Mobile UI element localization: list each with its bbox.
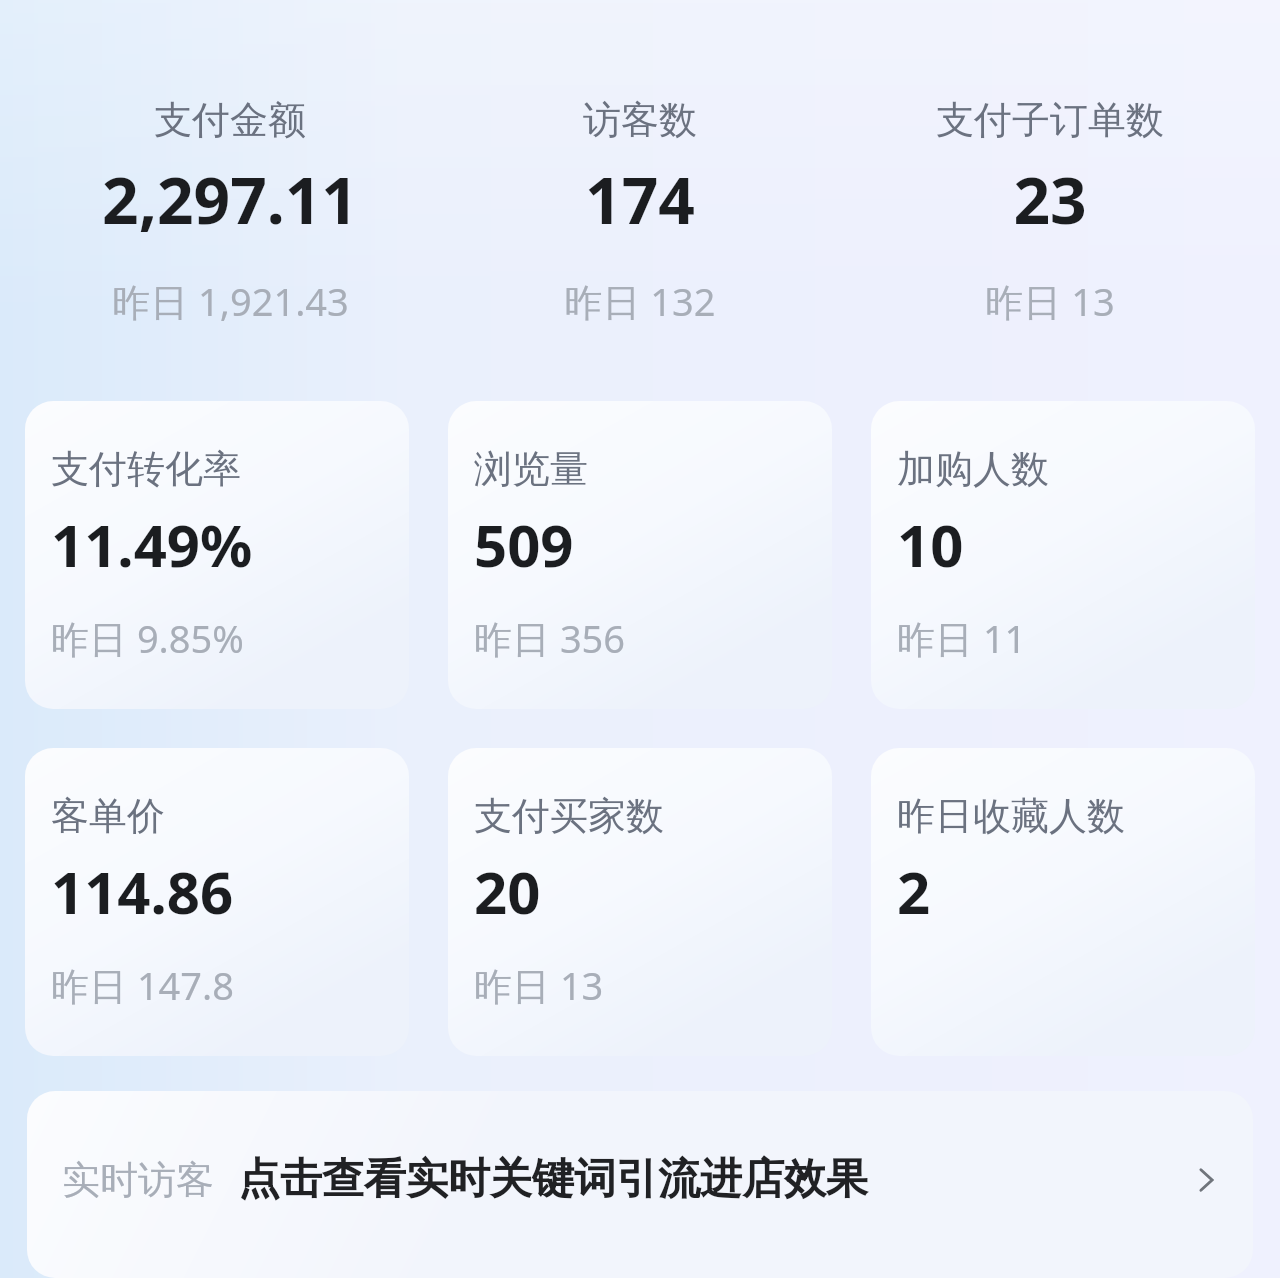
button[interactable]: 昨日收藏人数 <box>871 748 1255 1056</box>
staticText: 11.49% <box>51 505 253 584</box>
button[interactable]: 支付买家数 <box>448 748 832 1056</box>
staticText: 23 <box>1013 156 1087 243</box>
staticText: 2 <box>897 852 931 931</box>
staticText: 昨日 1,921.43 <box>112 275 349 327</box>
staticText: 加购人数 <box>897 445 1049 493</box>
staticText: 昨日 13 <box>985 275 1115 327</box>
staticText: 点击查看实时关键词引流进店效果 <box>238 1153 868 1206</box>
staticText: 509 <box>474 505 574 584</box>
button[interactable]: 实时访客 <box>27 1091 1253 1278</box>
staticText: 支付金额 <box>154 96 306 144</box>
staticText: 支付转化率 <box>51 445 241 493</box>
staticText: 昨日 9.85% <box>51 612 244 664</box>
button[interactable]: 支付转化率 <box>25 401 409 709</box>
staticText: 昨日 13 <box>474 959 604 1011</box>
staticText: 客单价 <box>51 792 165 840</box>
staticText: 2,297.11 <box>102 156 358 243</box>
staticText: 114.86 <box>51 852 234 931</box>
staticText: 浏览量 <box>474 445 588 493</box>
button[interactable]: 访客数 <box>435 96 845 327</box>
staticText: 昨日 11 <box>897 612 1027 664</box>
staticText: 20 <box>474 852 541 931</box>
button[interactable]: 支付子订单数 <box>845 96 1255 327</box>
staticText: 实时访客 <box>62 1156 214 1204</box>
button[interactable]: 支付金额 <box>25 96 435 327</box>
staticText: 昨日 356 <box>474 612 626 664</box>
staticText: 支付买家数 <box>474 792 664 840</box>
button[interactable]: 浏览量 <box>448 401 832 709</box>
staticText: 昨日 132 <box>564 275 716 327</box>
staticText: 10 <box>897 505 964 584</box>
button[interactable]: 客单价 <box>25 748 409 1056</box>
staticText: 访客数 <box>583 96 697 144</box>
button[interactable]: 加购人数 <box>871 401 1255 709</box>
staticText: 174 <box>585 156 695 243</box>
staticText: 昨日收藏人数 <box>897 792 1125 840</box>
staticText: 昨日 147.8 <box>51 959 235 1011</box>
staticText: 支付子订单数 <box>936 96 1164 144</box>
button[interactable]: 查看实时访客 <box>1189 1163 1223 1197</box>
